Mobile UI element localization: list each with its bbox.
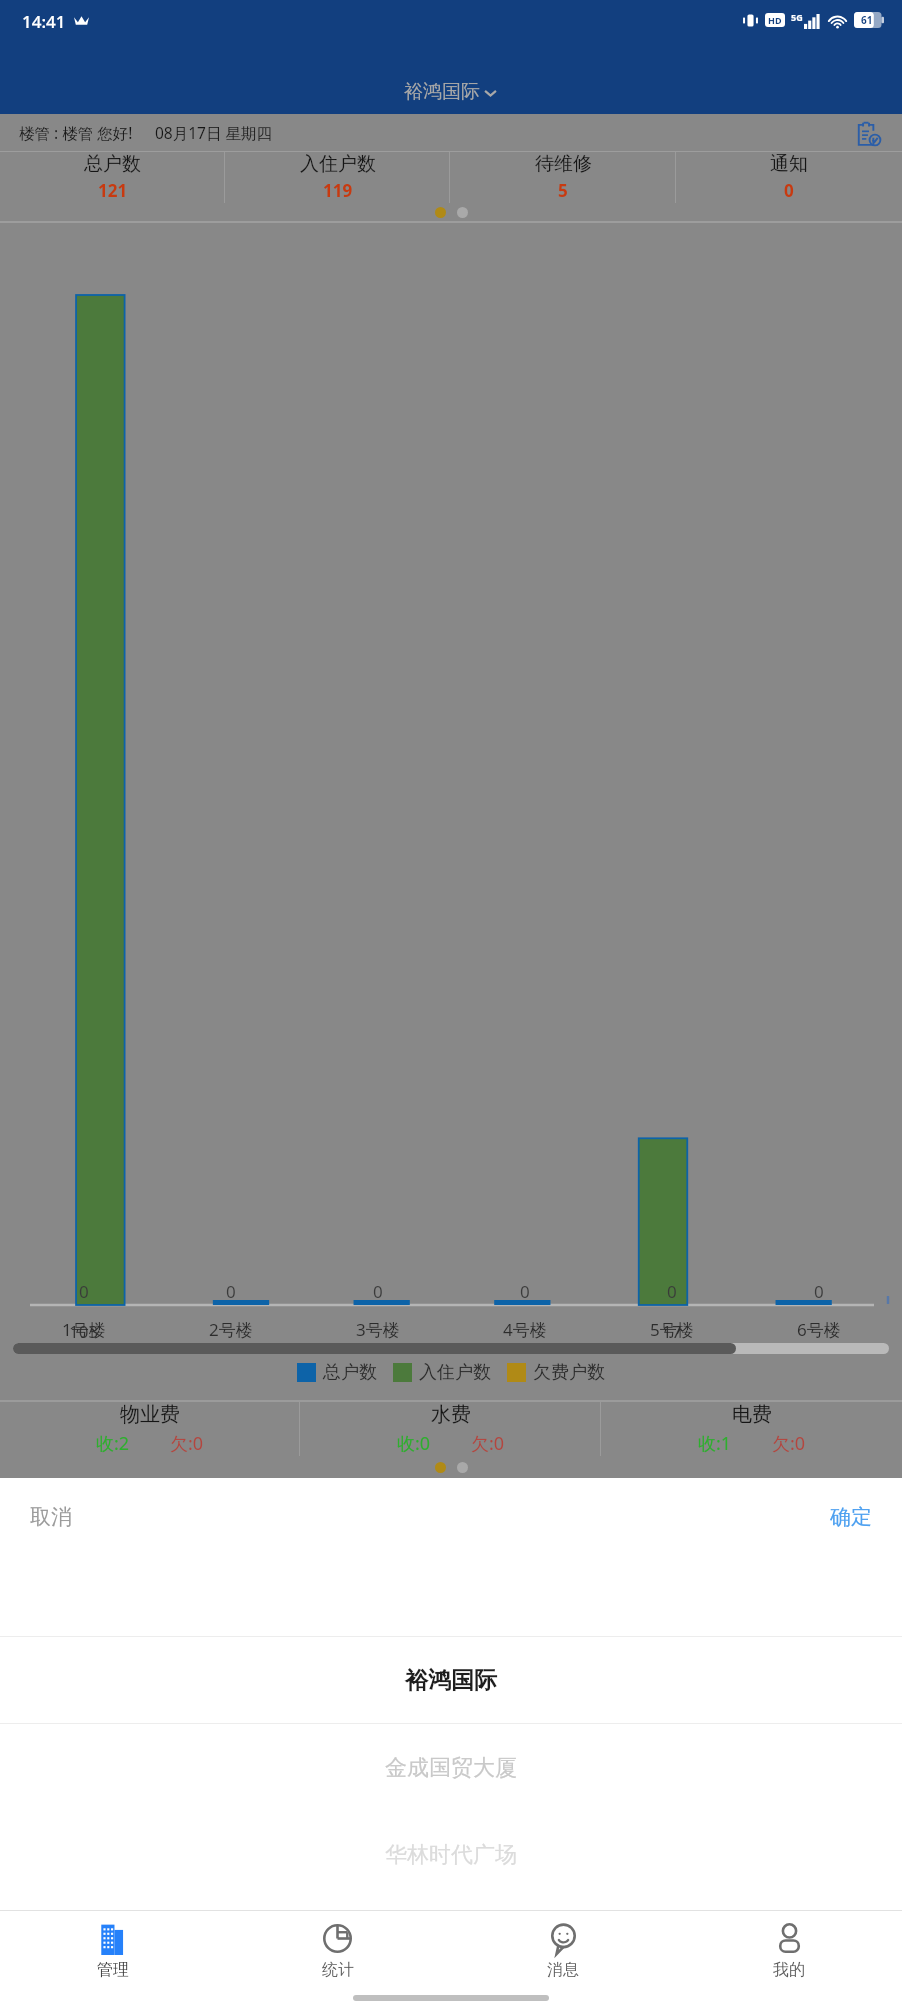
staticText: 楼管 : 楼管 您好! — [19, 122, 133, 143]
button[interactable]: 确定 — [830, 1504, 872, 1530]
staticText: 总户数 — [84, 152, 141, 176]
staticText: 消息 — [547, 1960, 579, 1980]
staticText: 收:0 — [397, 1431, 431, 1456]
button[interactable]: 裕鸿国际 — [0, 1637, 902, 1723]
staticText: 物业费 — [120, 1402, 180, 1427]
staticText: 2号楼 — [209, 1318, 253, 1341]
staticText: 欠:0 — [471, 1431, 505, 1456]
staticText: 4号楼 — [503, 1318, 547, 1341]
staticText: 0 — [784, 179, 794, 202]
staticText: 103 — [69, 1320, 99, 1343]
staticText: 0 — [814, 1280, 824, 1303]
staticText: 收:1 — [698, 1431, 732, 1456]
staticText: 5G — [791, 11, 803, 23]
staticText: 总户数 — [323, 1361, 377, 1384]
staticText: 17 — [662, 1320, 682, 1343]
staticText: 华林时代广场 — [385, 1841, 517, 1869]
staticText: 入住户数 — [300, 152, 376, 176]
staticText: 水费 — [431, 1402, 471, 1427]
staticText: 5号楼 — [650, 1318, 694, 1341]
button[interactable]: 待维修 — [450, 152, 676, 203]
staticText: 121 — [98, 179, 128, 202]
staticText: 1号楼 — [62, 1318, 106, 1341]
staticText: 0 — [226, 1280, 236, 1303]
staticText: 08月17日 星期四 — [155, 122, 272, 143]
staticText: 收:2 — [96, 1431, 130, 1456]
staticText: 0 — [520, 1280, 530, 1303]
button[interactable]: 金成国贸大厦 — [0, 1724, 902, 1812]
staticText: 欠:0 — [772, 1431, 806, 1456]
staticText: 确定 — [830, 1504, 872, 1530]
button[interactable]: 取消 — [30, 1504, 72, 1530]
button[interactable]: 水费 — [300, 1402, 601, 1456]
staticText: 统计 — [322, 1960, 354, 1980]
staticText: 0 — [79, 1280, 89, 1303]
button[interactable]: 入住户数 — [225, 152, 450, 203]
staticText: 待维修 — [535, 152, 592, 176]
staticText: 电费 — [732, 1402, 772, 1427]
staticText: 3号楼 — [356, 1318, 400, 1341]
button[interactable]: 总户数 — [0, 152, 225, 203]
staticText: 入住户数 — [419, 1361, 491, 1384]
staticText: 欠:0 — [170, 1431, 204, 1456]
button[interactable]: 消息 — [450, 1911, 676, 1991]
button[interactable]: 裕鸿国际 — [404, 80, 499, 104]
staticText: 119 — [323, 179, 353, 202]
button[interactable]: 统计 — [225, 1911, 450, 1991]
button[interactable]: 任务清单 — [853, 118, 883, 148]
staticText: 取消 — [30, 1504, 72, 1530]
staticText: 61 — [861, 13, 873, 27]
staticText: 裕鸿国际 — [405, 1666, 497, 1695]
staticText: 5 — [558, 179, 568, 202]
button[interactable]: 物业费 — [0, 1402, 300, 1456]
staticText: 裕鸿国际 — [404, 80, 480, 104]
button[interactable]: 华林时代广场 — [0, 1812, 902, 1898]
button[interactable]: 通知 — [676, 152, 902, 203]
staticText: 0 — [373, 1280, 383, 1303]
button[interactable]: 电费 — [601, 1402, 902, 1456]
staticText: 金成国贸大厦 — [385, 1754, 517, 1782]
staticText: 管理 — [97, 1960, 129, 1980]
button[interactable]: 我的 — [676, 1911, 902, 1991]
staticText: 我的 — [773, 1960, 805, 1980]
button[interactable]: 管理 — [0, 1911, 225, 1991]
staticText: 欠费户数 — [533, 1361, 605, 1384]
staticText: 14:41 — [22, 10, 66, 33]
staticText: 6号楼 — [797, 1318, 841, 1341]
staticText: 通知 — [770, 152, 808, 176]
staticText: HD — [768, 14, 782, 26]
staticText: 0 — [667, 1280, 677, 1303]
